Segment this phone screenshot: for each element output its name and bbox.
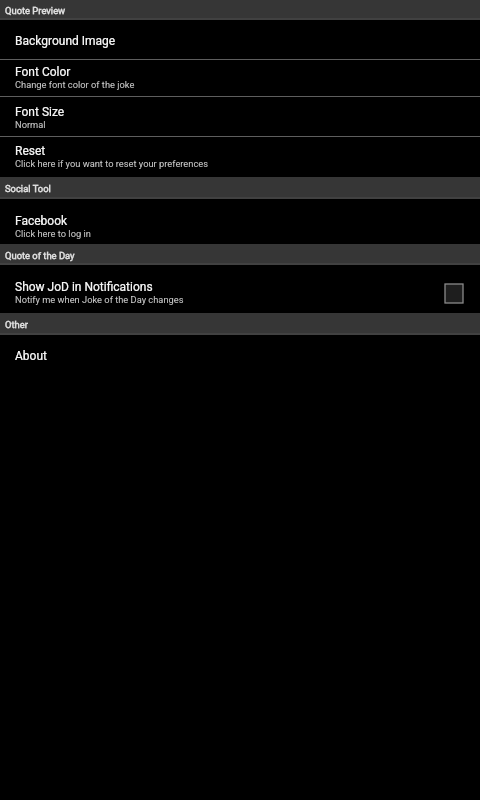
button[interactable]: Font Size	[0, 97, 480, 136]
staticText: Change font color of the joke	[15, 79, 135, 90]
staticText: Click here if you want to reset your pre…	[15, 158, 209, 169]
button[interactable]: Font Color	[0, 60, 480, 96]
button[interactable]: Background Image	[0, 20, 480, 59]
staticText: Social Tool	[5, 183, 51, 194]
staticText: Show JoD in Notifications	[15, 280, 153, 294]
button[interactable]: Reset	[0, 137, 480, 177]
staticText: Quote Preview	[5, 5, 66, 16]
button[interactable]: About	[0, 335, 480, 375]
staticText: Font Size	[15, 105, 65, 119]
staticText: Font Color	[15, 65, 71, 79]
staticText: Click here to log in	[15, 228, 91, 239]
staticText: Quote of the Day	[5, 250, 75, 261]
staticText: About	[15, 349, 47, 363]
button[interactable]: Show Joke of the Day in notifications	[434, 273, 474, 313]
staticText: Background Image	[15, 34, 116, 48]
staticText: Reset	[15, 144, 46, 158]
button[interactable]: Show JoD in Notifications	[0, 265, 480, 313]
staticText: Facebook	[15, 214, 68, 228]
staticText: Notify me when Joke of the Day changes	[15, 294, 184, 305]
staticText: Normal	[15, 119, 46, 130]
staticText: Other	[5, 319, 28, 330]
button[interactable]: Facebook	[0, 199, 480, 244]
